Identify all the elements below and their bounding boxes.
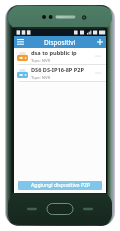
button[interactable]: dsa to pubblic ip: [14, 48, 106, 64]
button[interactable]: More options: [93, 66, 103, 80]
staticText: DS6 DS-IP16-8P P2P: [31, 66, 84, 74]
button[interactable]: More options: [93, 49, 103, 63]
staticText: Tipo: NVR: [31, 58, 51, 64]
staticText: Aggiungi dispositivo P2P: [31, 182, 90, 189]
staticText: dsa to pubblic ip: [31, 49, 77, 57]
button[interactable]: Aggiungi dispositivo P2P: [18, 181, 102, 190]
staticText: Dispositivi: [44, 38, 76, 47]
button[interactable]: Add device: [93, 36, 106, 48]
staticText: Tipo: NVR: [31, 75, 51, 81]
button[interactable]: Menu: [14, 36, 27, 48]
button[interactable]: DS6 DS-IP16-8P P2P: [14, 65, 106, 81]
